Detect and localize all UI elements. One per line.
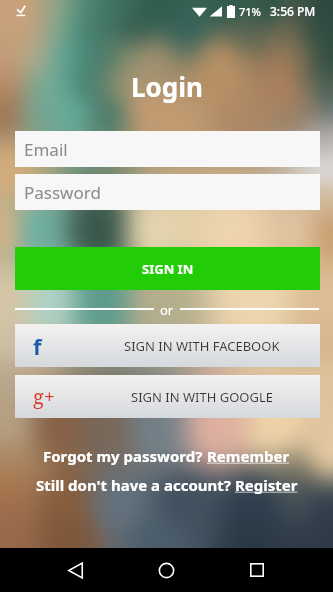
staticText: SIGN IN WITH GOOGLE	[131, 388, 273, 406]
button[interactable]: SIGN IN	[15, 247, 320, 290]
other: Download complete	[14, 4, 28, 18]
staticText: 3:56 PM	[270, 3, 316, 19]
staticText: Still don't have a account?	[36, 475, 235, 495]
button[interactable]: f	[15, 324, 320, 367]
staticText: or	[160, 301, 174, 317]
staticText: Register	[235, 475, 298, 495]
staticText: SIGN IN	[142, 260, 194, 278]
staticText: 71%	[239, 4, 261, 19]
staticText: SIGN IN WITH FACEBOOK	[124, 337, 280, 355]
button[interactable]: Email	[15, 131, 320, 167]
button[interactable]: g+	[15, 375, 320, 418]
staticText: Password	[24, 181, 101, 204]
button[interactable]: Remember	[207, 446, 290, 466]
button[interactable]: Recent apps	[235, 548, 279, 592]
staticText: Login	[131, 69, 203, 104]
staticText: Remember	[207, 446, 290, 466]
staticText: f	[33, 331, 42, 361]
button[interactable]: Password	[15, 174, 320, 210]
staticText: g+	[33, 383, 55, 410]
button[interactable]: Home	[144, 548, 188, 592]
button[interactable]: Register	[235, 475, 298, 495]
staticText: Email	[24, 138, 68, 161]
button[interactable]: Back	[53, 548, 97, 592]
staticText: Forgot my password?	[43, 446, 207, 466]
